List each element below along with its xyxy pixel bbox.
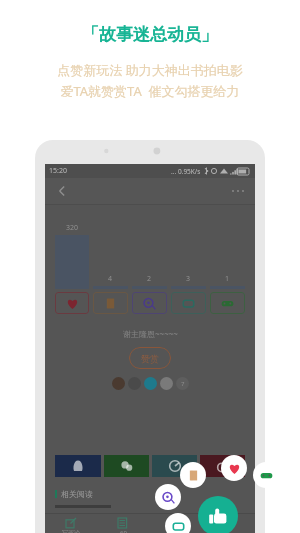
button[interactable]: User avatar xyxy=(112,377,125,390)
button[interactable]: User avatar xyxy=(128,377,141,390)
staticText: ... 0.95K/s xyxy=(171,167,201,176)
staticText: 69 xyxy=(120,529,127,533)
button[interactable]: Like xyxy=(221,455,247,481)
staticText: 15:20 xyxy=(49,166,67,176)
button[interactable]: 7 xyxy=(176,377,189,390)
button[interactable]: User avatar xyxy=(144,377,157,390)
button[interactable]: User avatar xyxy=(160,377,173,390)
button[interactable]: TV xyxy=(165,513,191,533)
staticText: 1 xyxy=(225,274,230,284)
button[interactable]: 69 xyxy=(97,514,149,533)
staticText: 3 xyxy=(186,274,191,284)
button[interactable]: 赞赏 xyxy=(129,347,171,369)
button[interactable]: 分享 xyxy=(149,514,202,533)
button[interactable]: Back xyxy=(53,182,71,200)
button[interactable]: More options xyxy=(229,182,247,200)
button[interactable]: Game xyxy=(253,462,279,488)
button[interactable]: Share to WeChat xyxy=(104,455,149,477)
staticText: 320 xyxy=(66,223,79,233)
button[interactable]: Share to Circle xyxy=(152,455,197,477)
staticText: 赞赏 xyxy=(141,353,159,364)
staticText: 相关阅读 xyxy=(61,489,93,499)
button[interactable]: Book xyxy=(180,462,206,488)
staticText: 「故事迷总动员」 xyxy=(82,24,218,45)
staticText: 爱TA就赞赏TA 催文勾搭更给力 xyxy=(60,82,240,100)
staticText: 7 xyxy=(181,380,185,388)
button[interactable]: Like xyxy=(198,496,238,533)
staticText: 写评论 xyxy=(62,529,80,533)
button[interactable]: Category 2 xyxy=(93,292,128,314)
button[interactable]: 写评论 xyxy=(45,514,97,533)
button[interactable]: Category 1 xyxy=(55,292,89,314)
button[interactable]: Category 4 xyxy=(171,292,206,314)
button[interactable]: Share to Weibo xyxy=(200,455,245,477)
staticText: 分享 xyxy=(170,529,182,533)
button[interactable]: Category 5 xyxy=(210,292,245,314)
staticText: 4 xyxy=(108,274,113,284)
staticText: 2 xyxy=(147,274,152,284)
button[interactable]: Movie xyxy=(155,484,181,510)
staticText: 谢主隆恩~~~~~ xyxy=(123,328,178,339)
button[interactable]: Category 3 xyxy=(132,292,167,314)
button[interactable]: Share to QQ xyxy=(55,455,101,477)
staticText: 点赞新玩法 助力大神出书拍电影 xyxy=(57,61,243,79)
button[interactable] xyxy=(202,514,255,533)
